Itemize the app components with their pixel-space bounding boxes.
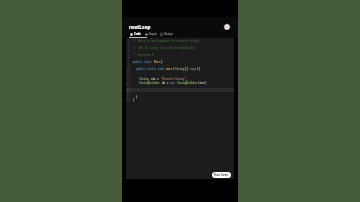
staticText: // Beginner-0 [133, 53, 154, 57]
staticText: 1 [128, 39, 130, 43]
staticText: public static void [133, 67, 166, 71]
button[interactable]: Run Code [212, 172, 231, 178]
staticText: 7 [128, 60, 130, 64]
button[interactable]: Settings [222, 23, 231, 30]
staticText: 5 [128, 53, 130, 57]
staticText: String [175, 67, 185, 71]
staticText: str = [151, 77, 161, 81]
staticText: 2 [128, 42, 130, 46]
staticText: } [133, 95, 138, 99]
staticText: Output [164, 32, 174, 36]
staticText: // JDK: By using java.lang.StringBuilder [133, 46, 196, 50]
staticText: StringBuilder [177, 81, 198, 85]
staticText: ; [186, 77, 188, 81]
staticText: main [166, 67, 173, 71]
staticText: 6 [128, 56, 130, 60]
staticText: 9 [128, 67, 130, 71]
staticText: ){ [197, 67, 201, 71]
button[interactable]: Input [145, 30, 158, 38]
staticText: 8 [128, 63, 130, 67]
staticText: 13 [127, 81, 131, 85]
staticText: nextLoop [129, 24, 151, 30]
staticText: ( [173, 67, 175, 71]
staticText: 17 [127, 95, 131, 99]
staticText: 11 [127, 74, 131, 78]
staticText: 15 [127, 88, 131, 92]
staticText: 14 [127, 84, 131, 88]
staticText: sb = [162, 81, 170, 85]
staticText: String [133, 77, 151, 81]
staticText: args [190, 67, 197, 71]
staticText: { [161, 60, 163, 64]
staticText: 16 [127, 91, 131, 95]
staticText: 4 [128, 49, 130, 53]
staticText: 18 [127, 98, 131, 102]
staticText: 10 [127, 70, 131, 74]
staticText: Input [149, 32, 157, 36]
staticText: [] [185, 67, 190, 71]
staticText: (str); [198, 81, 208, 85]
staticText: new [170, 81, 177, 85]
staticText: } [133, 98, 135, 102]
staticText: "Reverse String" [161, 77, 186, 81]
button[interactable]: Code [130, 30, 143, 38]
staticText: StringBuilder [133, 81, 162, 85]
staticText: 12 [127, 77, 131, 81]
button[interactable]: Output [160, 30, 174, 38]
staticText: // Write a Java program for reverse stri… [133, 39, 200, 43]
staticText: Run Code [214, 173, 229, 177]
staticText: Main [154, 60, 161, 64]
staticText: Code [134, 32, 141, 36]
staticText: public class [133, 60, 154, 64]
